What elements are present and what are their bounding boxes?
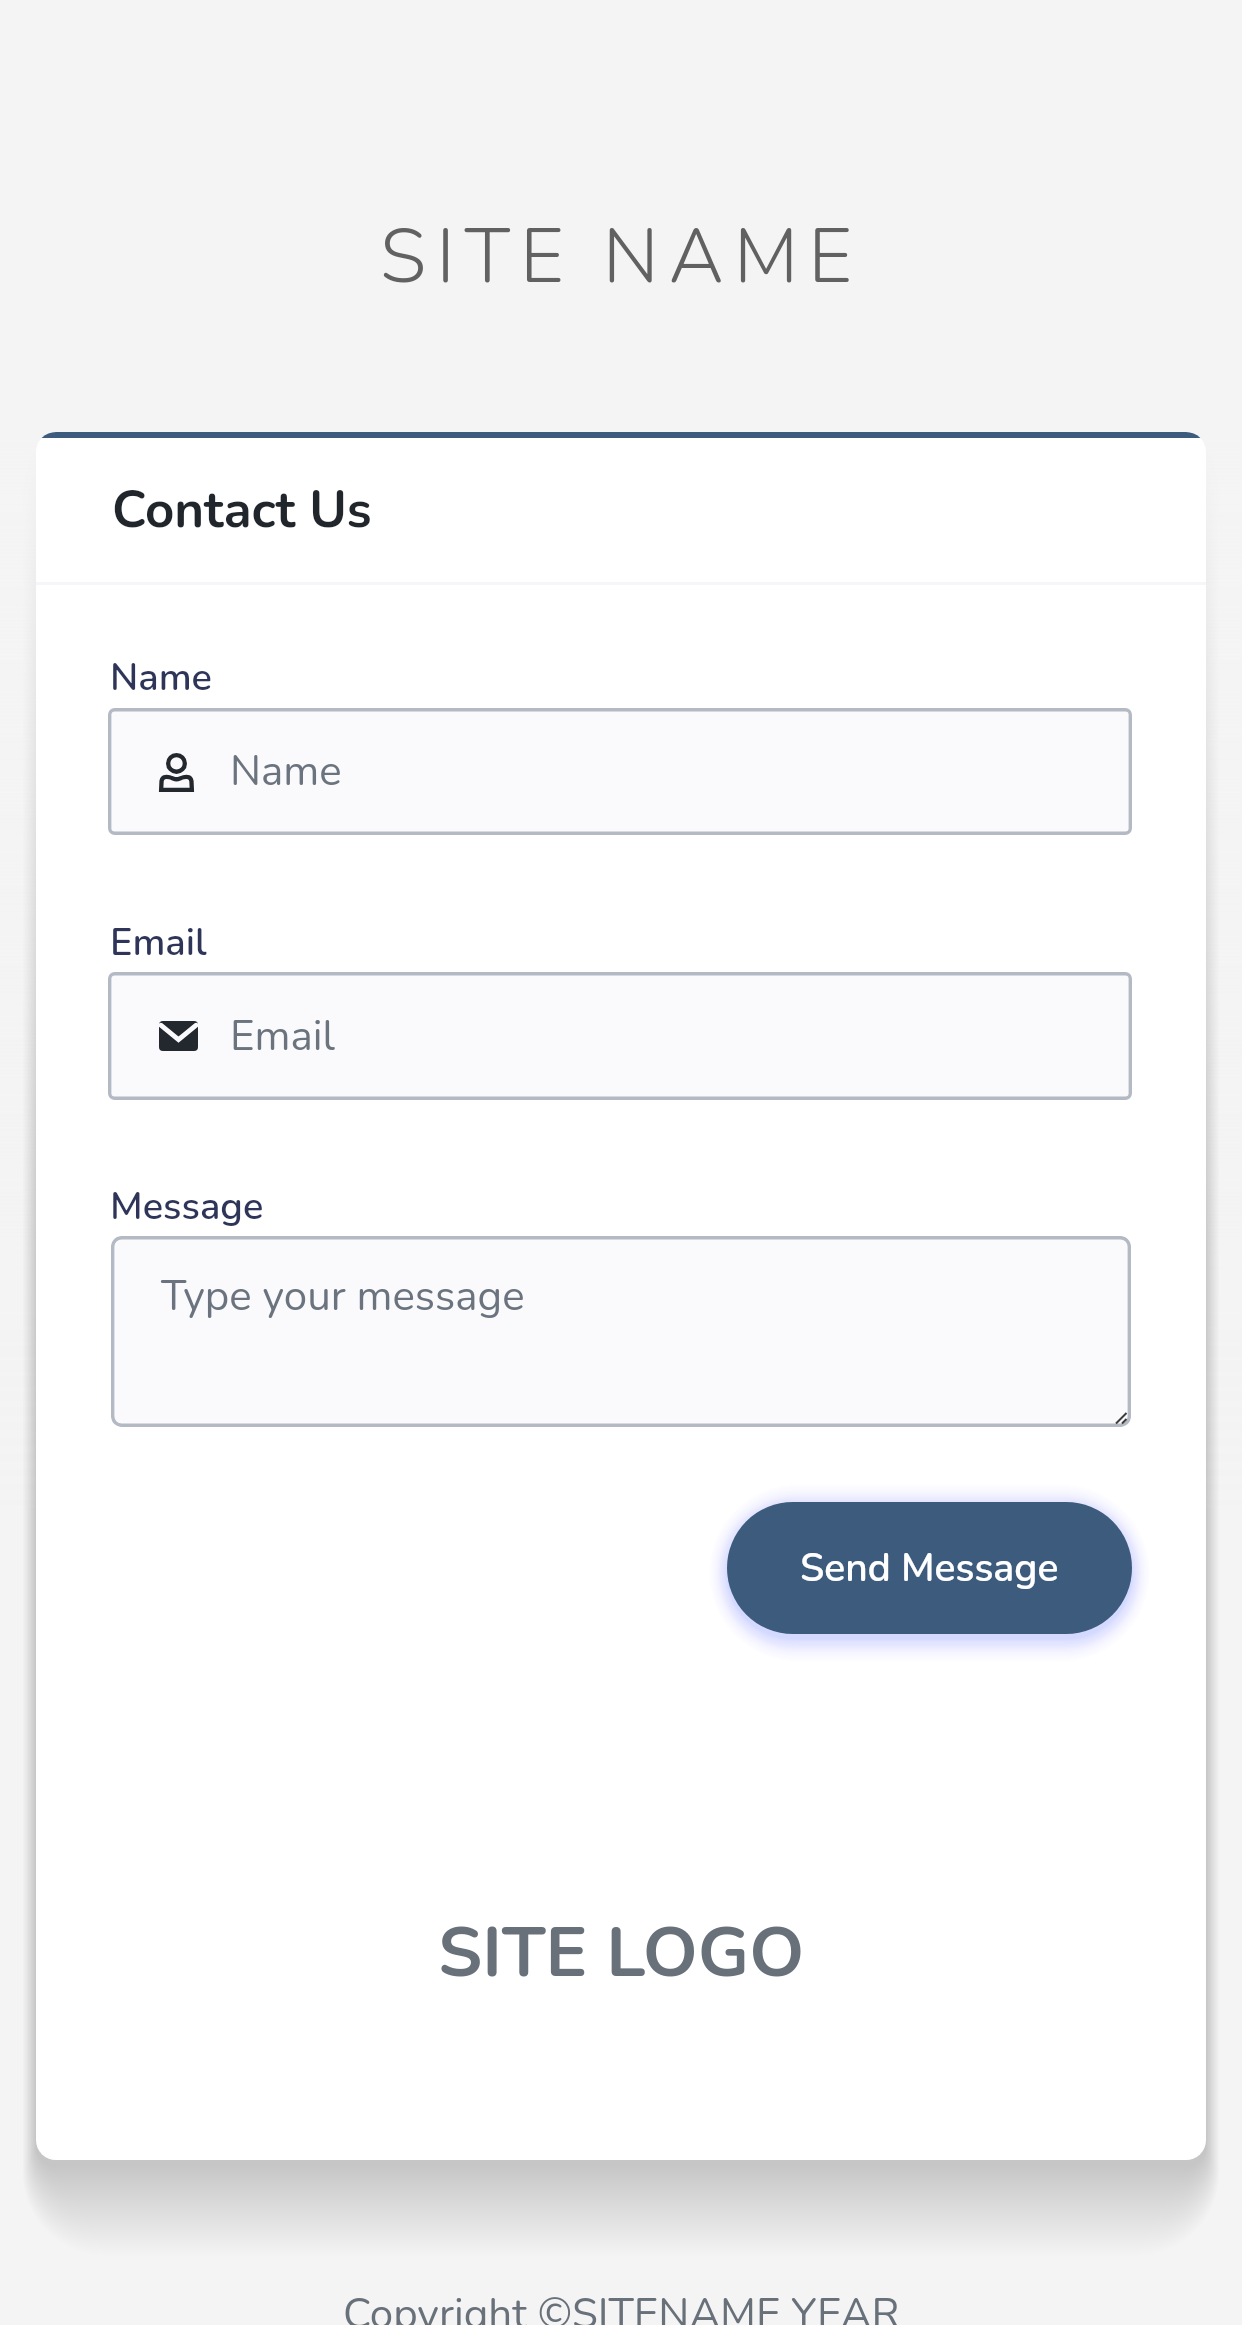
staticText: Email — [110, 917, 207, 969]
staticText: Name — [110, 652, 212, 704]
staticText: Send Message — [800, 1542, 1059, 1595]
button[interactable]: Email input — [108, 972, 1132, 1100]
button[interactable]: Send Message — [727, 1502, 1132, 1634]
staticText: SITE LOGO — [438, 1905, 805, 2000]
button[interactable]: Name input — [108, 708, 1132, 835]
button[interactable]: Message input — [111, 1236, 1131, 1427]
staticText: Email — [230, 1008, 335, 1065]
staticText: Message — [110, 1181, 264, 1233]
staticText: SITE NAME — [380, 205, 862, 309]
staticText: Type your message — [161, 1268, 525, 1325]
staticText: Name — [230, 743, 342, 800]
staticText: Contact Us — [112, 475, 372, 545]
staticText: Copyright ©SITENAME YEAR — [343, 2286, 900, 2325]
